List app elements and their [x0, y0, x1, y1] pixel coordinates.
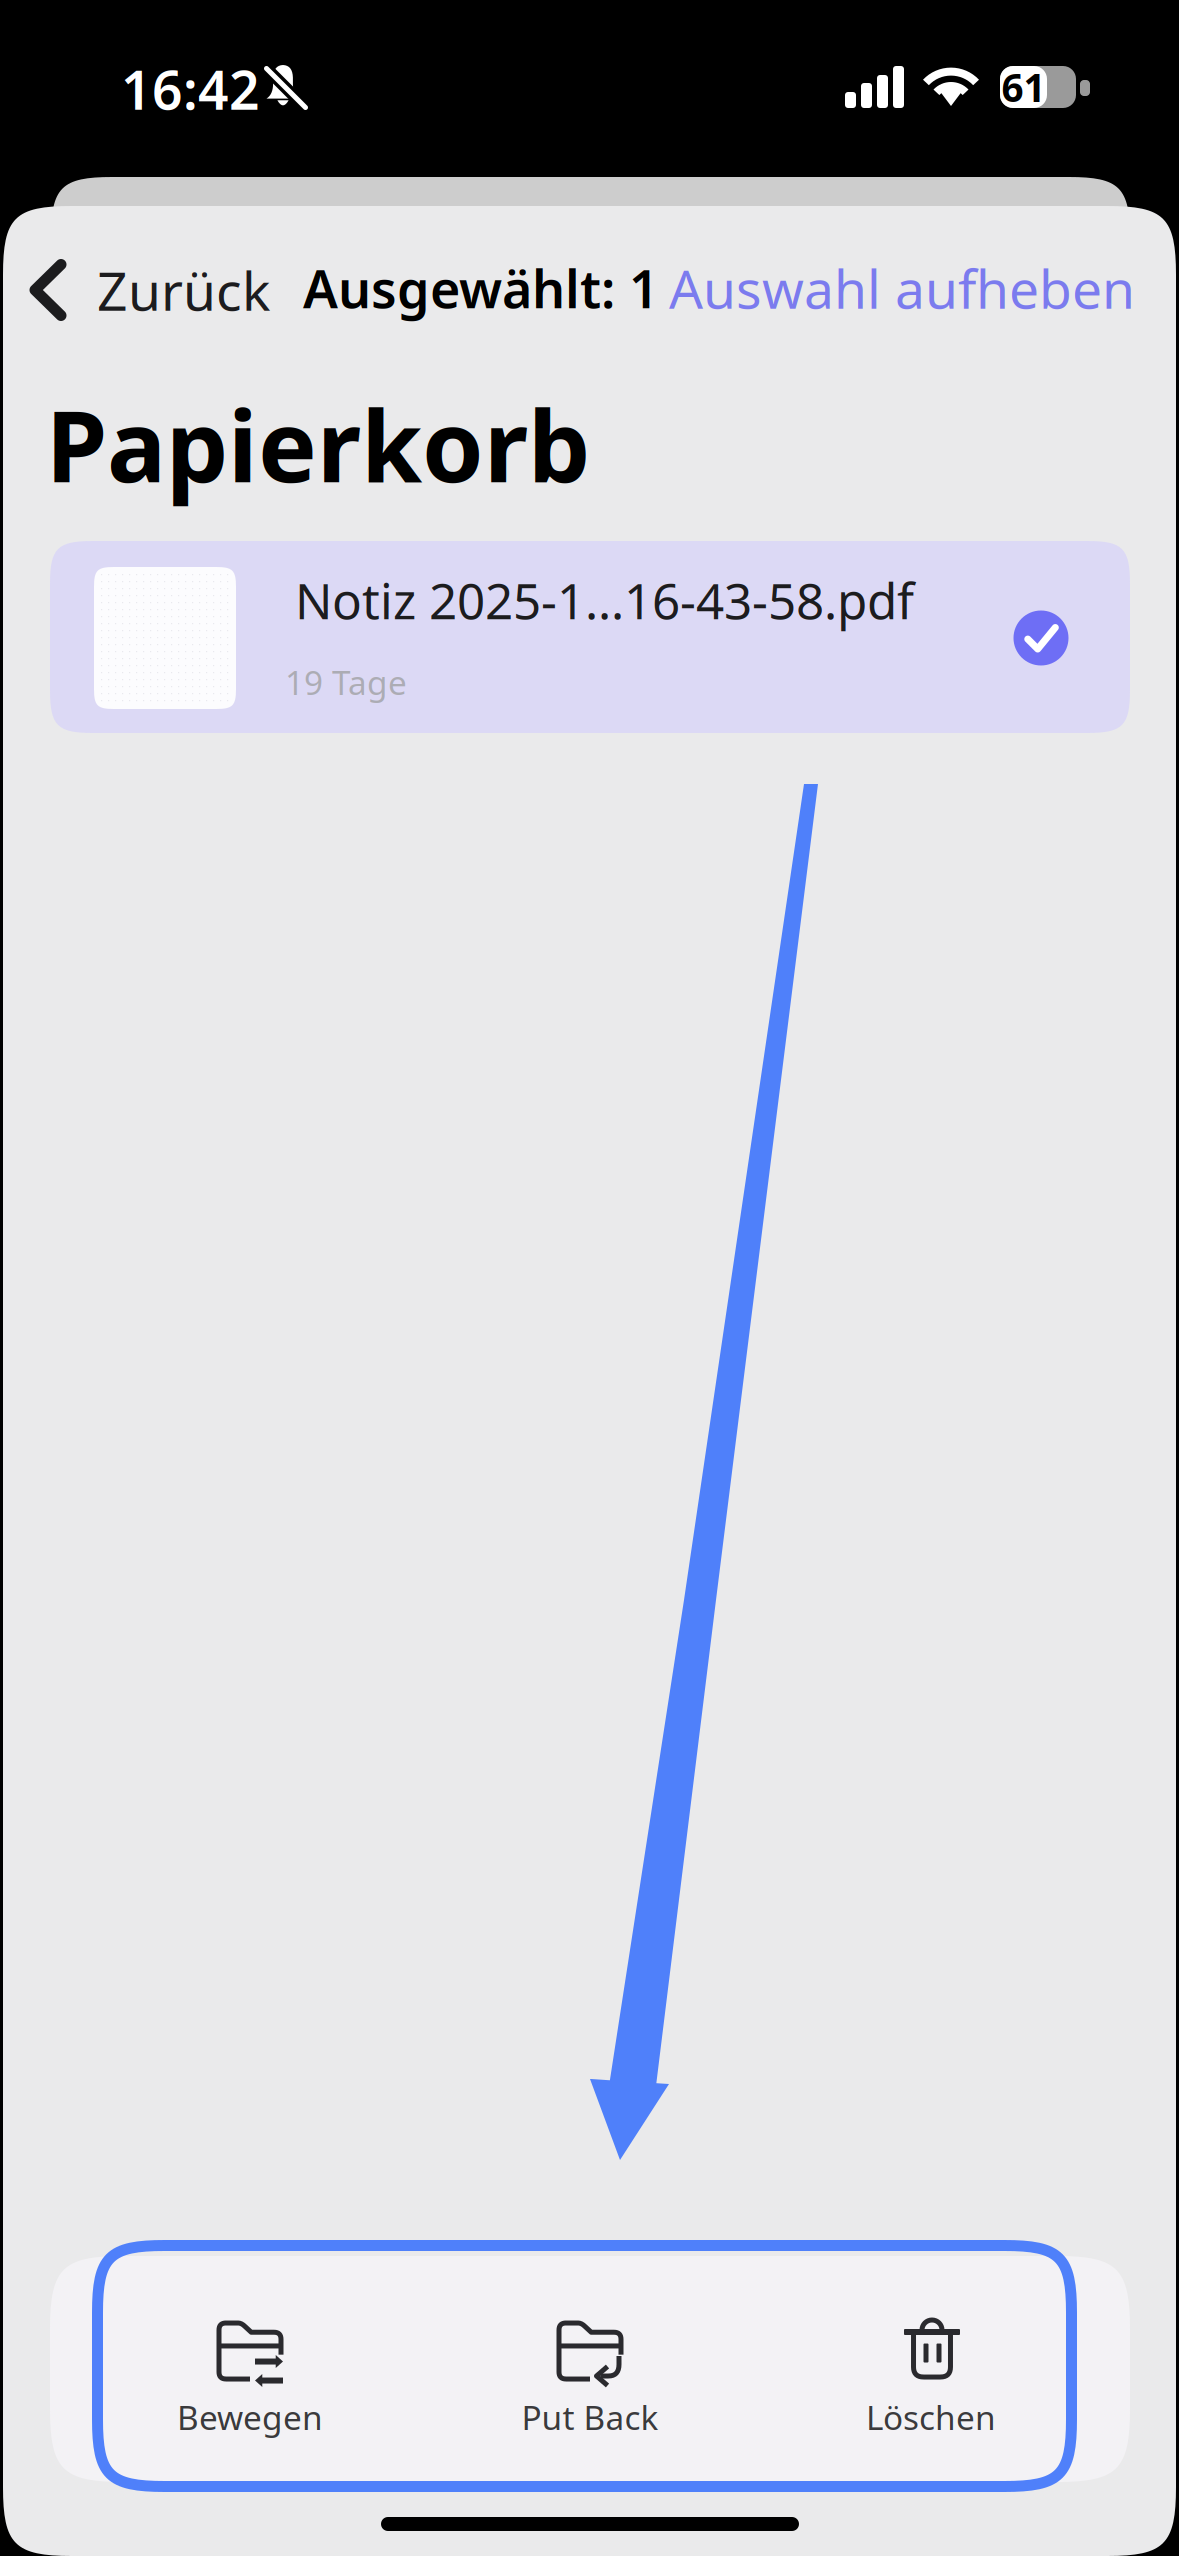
staticText: Ausgewählt: 1 — [303, 253, 659, 323]
staticText: Papierkorb — [46, 378, 590, 509]
staticText: 19 Tage — [285, 660, 407, 704]
button[interactable]: Zurück — [14, 246, 284, 334]
button[interactable]: Notiz 2025-1...16-43-58.pdf — [50, 541, 1130, 733]
staticText: Löschen — [866, 2395, 996, 2439]
button[interactable]: Auswahl aufheben — [669, 248, 1149, 328]
staticText: 16:42 — [121, 54, 260, 124]
staticText: Notiz 2025-1...16-43-58.pdf — [295, 567, 914, 633]
staticText: Auswahl aufheben — [669, 253, 1135, 323]
staticText: Bewegen — [177, 2395, 323, 2439]
staticText: Zurück — [97, 255, 270, 325]
button[interactable]: Löschen — [771, 2290, 1091, 2470]
button[interactable]: Put Back — [430, 2290, 750, 2470]
button[interactable]: Bewegen — [90, 2290, 410, 2470]
staticText: Put Back — [521, 2395, 658, 2439]
staticText: 61 — [1001, 61, 1045, 113]
